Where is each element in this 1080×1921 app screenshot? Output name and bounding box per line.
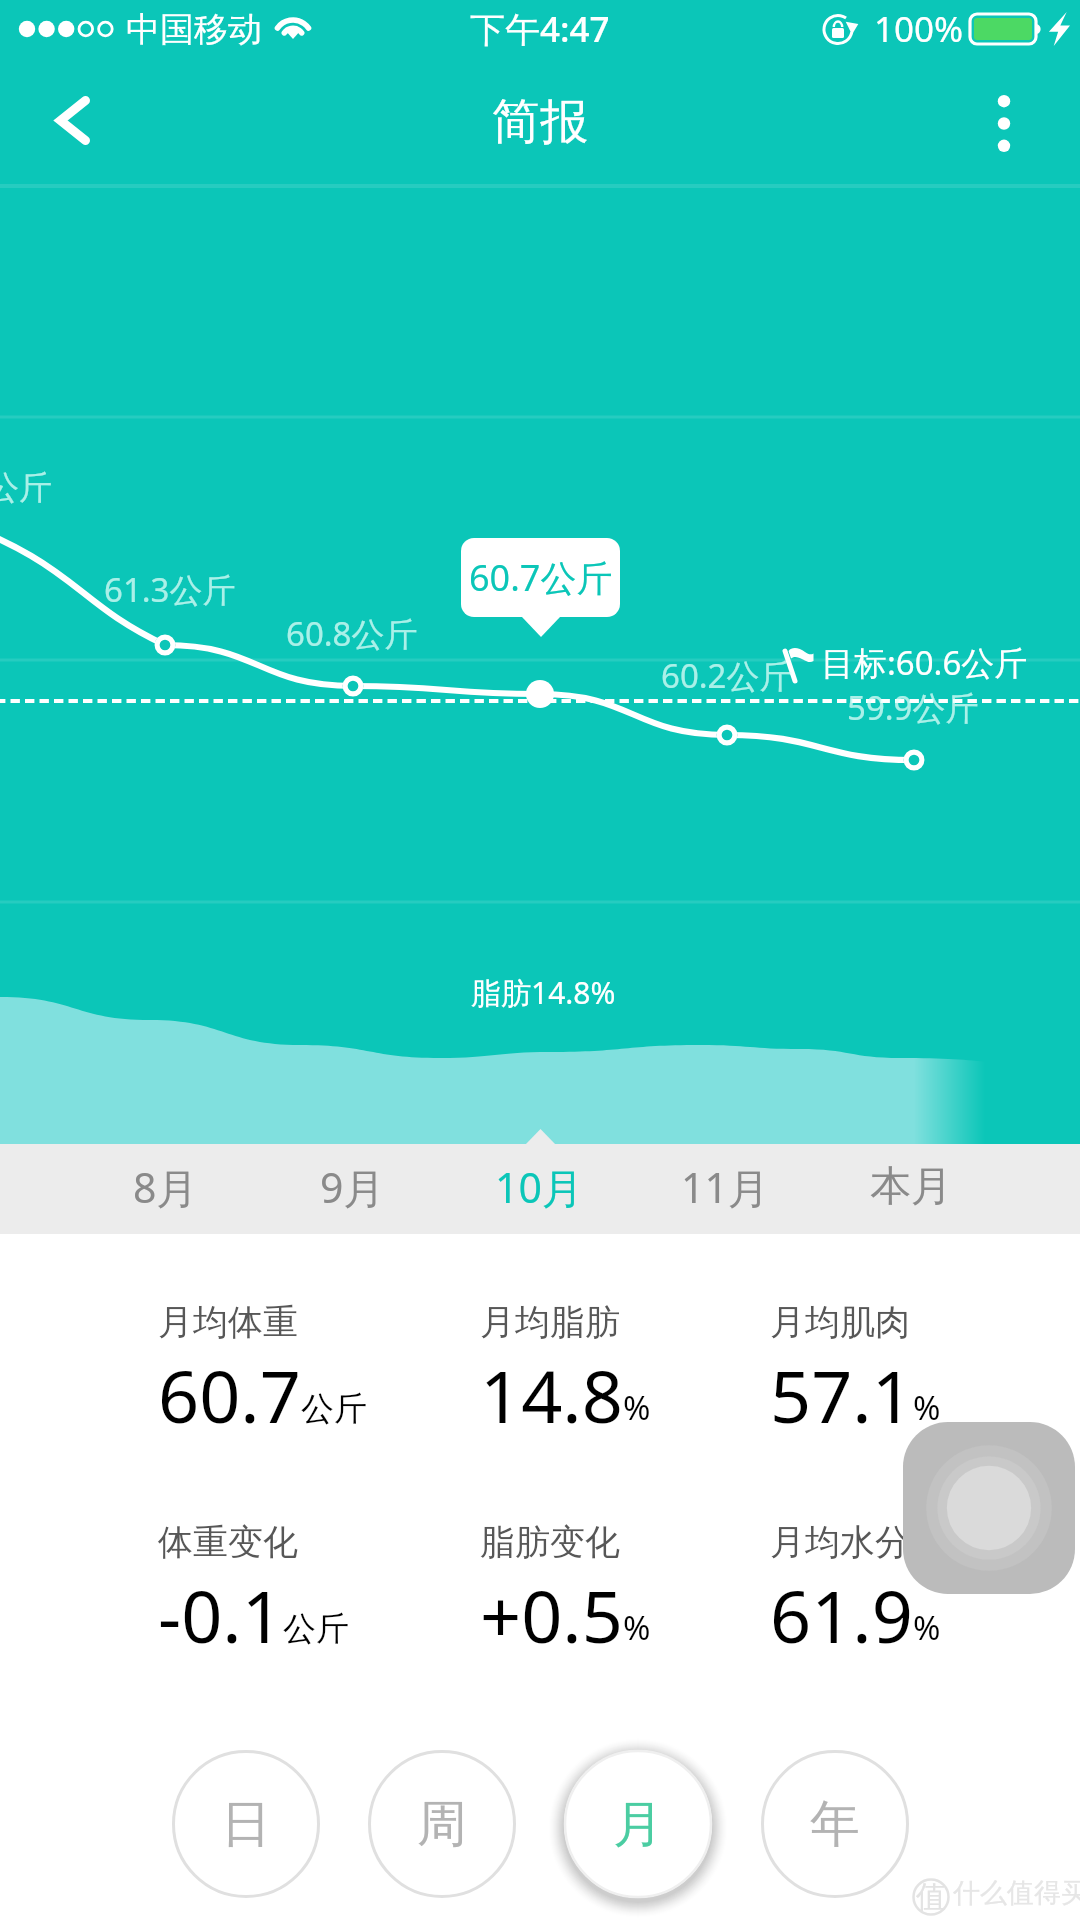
button[interactable]: 体重变化 — [158, 1520, 458, 1664]
staticText: 60.8公斤 — [286, 611, 418, 656]
staticText: 9月 — [320, 1159, 385, 1215]
button[interactable]: 9月 — [259, 1144, 446, 1234]
staticText: 月均肌肉 — [770, 1300, 910, 1344]
staticText: 100% — [874, 5, 964, 53]
staticText: 脂肪变化 — [480, 1520, 620, 1564]
staticText: 月 — [613, 1793, 663, 1856]
button[interactable]: Back — [21, 66, 121, 178]
staticText: 目标:60.6公斤 — [821, 640, 1028, 685]
button[interactable]: 周 — [350, 1732, 534, 1916]
button[interactable]: 月 — [546, 1732, 730, 1916]
staticText: 值 — [916, 1878, 946, 1916]
button[interactable]: 年 — [743, 1732, 927, 1916]
staticText: 11月 — [681, 1159, 769, 1215]
button[interactable]: 月均肌肉 — [770, 1300, 1070, 1444]
button[interactable]: 月均水分 — [770, 1520, 1070, 1664]
staticText: 10月 — [495, 1159, 583, 1215]
staticText: 本月 — [870, 1161, 952, 1213]
staticText: 下午4:47 — [470, 5, 610, 53]
staticText: 8月 — [133, 1159, 198, 1215]
button[interactable]: 60.7公斤 — [461, 538, 620, 617]
staticText: 14.8 — [480, 1346, 623, 1444]
staticText: 日 — [221, 1793, 271, 1856]
staticText: 月均脂肪 — [480, 1300, 620, 1344]
staticText: 公斤 — [301, 1388, 367, 1430]
button[interactable]: 日 — [154, 1732, 338, 1916]
staticText: % — [623, 1605, 651, 1650]
button[interactable]: 11月 — [632, 1144, 818, 1234]
button[interactable]: 脂肪变化 — [480, 1520, 780, 1664]
staticText: 57.1 — [770, 1346, 913, 1444]
staticText: 年 — [810, 1793, 860, 1856]
staticText: 60.7公斤 — [469, 553, 613, 602]
button[interactable]: 8月 — [72, 1144, 259, 1234]
staticText: % — [913, 1605, 941, 1650]
staticText: 61.3公斤 — [104, 567, 236, 612]
staticText: 60.7 — [158, 1346, 301, 1444]
staticText: 公斤 — [0, 467, 52, 509]
button[interactable]: 月均脂肪 — [480, 1300, 780, 1444]
staticText: 60.2公斤 — [661, 653, 793, 698]
staticText: 59.9公斤 — [847, 685, 979, 730]
staticText: 61.9 — [770, 1566, 913, 1664]
staticText: 公斤 — [283, 1608, 349, 1650]
staticText: 脂肪14.8% — [471, 972, 616, 1013]
staticText: 月均水分 — [770, 1520, 910, 1564]
staticText: 中国移动 — [126, 8, 262, 51]
staticText: 周 — [417, 1793, 467, 1856]
staticText: +0.5 — [480, 1566, 623, 1664]
button[interactable]: More options — [960, 66, 1048, 178]
staticText: % — [913, 1385, 941, 1430]
button[interactable]: 月均体重 — [158, 1300, 458, 1444]
button[interactable]: 本月 — [818, 1144, 1004, 1234]
staticText: 月均体重 — [158, 1300, 298, 1344]
staticText: % — [623, 1385, 651, 1430]
staticText: 体重变化 — [158, 1520, 298, 1564]
staticText: -0.1 — [158, 1566, 283, 1664]
staticText: 什么值得买 — [953, 1876, 1080, 1910]
staticText: 简报 — [492, 92, 588, 152]
button[interactable]: 10月 — [446, 1144, 632, 1234]
